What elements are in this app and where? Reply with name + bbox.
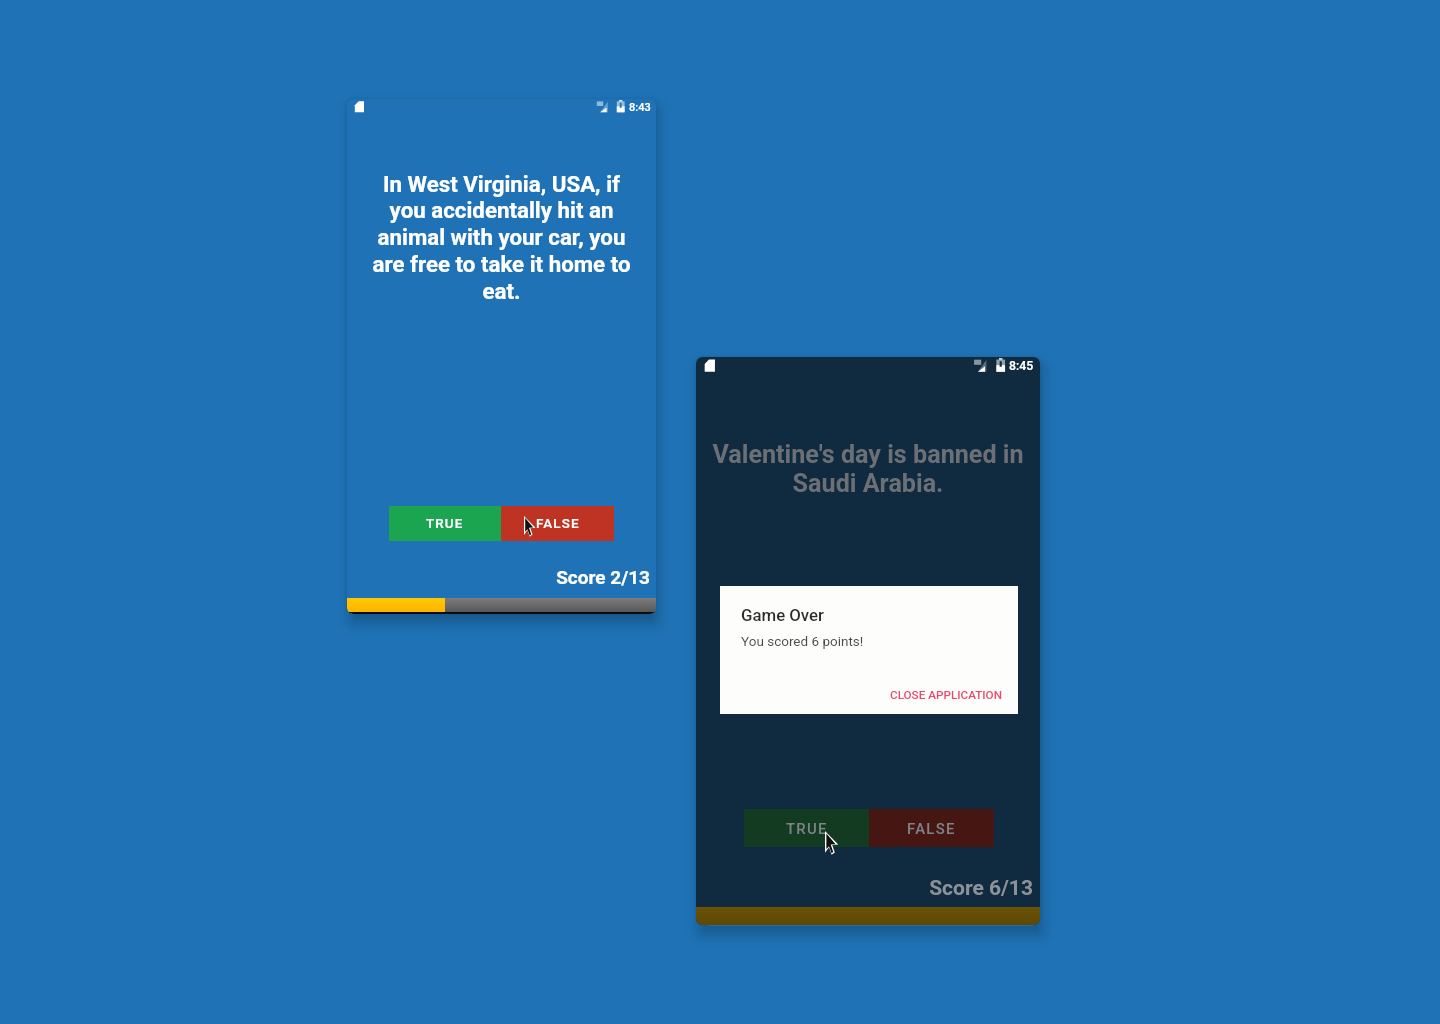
- staticText: TRUE: [786, 820, 828, 837]
- button[interactable]: FALSE: [869, 809, 994, 847]
- staticText: Game Over: [741, 605, 825, 625]
- staticText: You scored 6 points!: [741, 633, 864, 649]
- staticText: FALSE: [907, 820, 956, 837]
- button[interactable]: TRUE: [744, 809, 869, 847]
- button[interactable]: FALSE: [501, 506, 614, 541]
- staticText: CLOSE APPLICATION: [890, 688, 1002, 702]
- staticText: Score 6/13: [696, 875, 1033, 900]
- staticText: 8:43: [629, 101, 651, 114]
- staticText: FALSE: [536, 516, 580, 532]
- staticText: In West Virginia, USA, if you accidental…: [367, 171, 636, 304]
- other: Status bar: signal and battery: [347, 99, 656, 119]
- staticText: 8:45: [1009, 359, 1034, 373]
- staticText: Valentine's day is banned in Saudi Arabi…: [710, 440, 1026, 498]
- staticText: Score 2/13: [347, 566, 650, 588]
- other: Status bar: signal and battery: [696, 357, 1040, 379]
- staticText: TRUE: [426, 516, 464, 532]
- button[interactable]: CLOSE APPLICATION: [874, 678, 1018, 714]
- button[interactable]: TRUE: [389, 506, 501, 541]
